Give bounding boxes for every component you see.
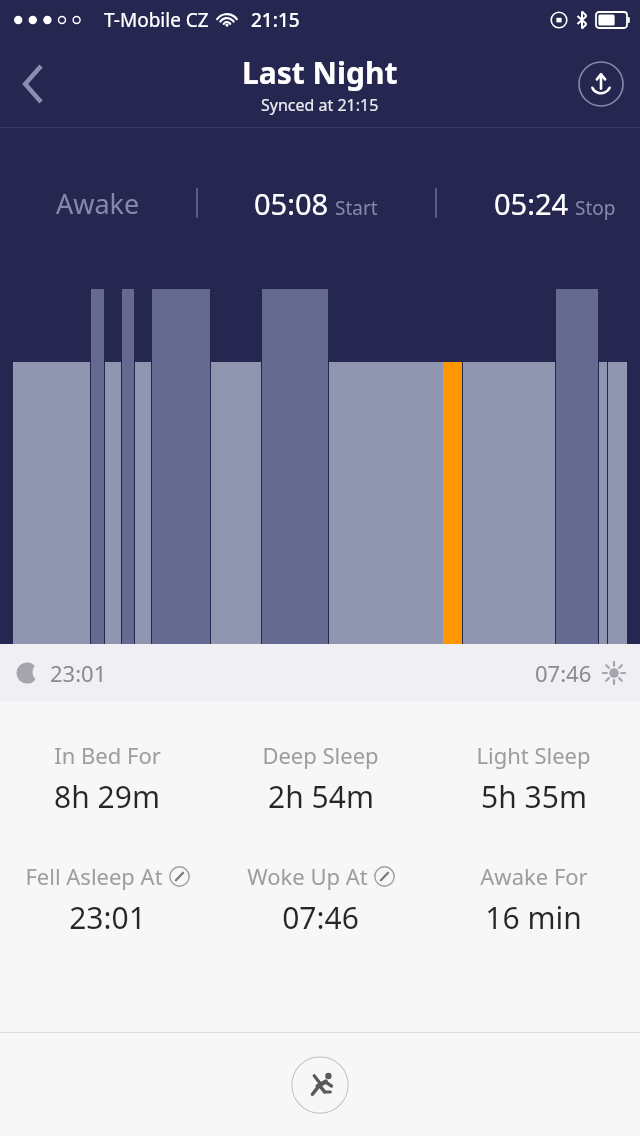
- staticText: 05:08: [254, 184, 329, 223]
- button[interactable]: Light Sleep: [427, 736, 640, 821]
- button[interactable]: Share: [576, 59, 626, 109]
- button[interactable]: Activity: [291, 1056, 349, 1114]
- staticText: 05:24: [494, 184, 569, 223]
- staticText: Awake: [56, 185, 140, 222]
- staticText: Fell Asleep At: [25, 861, 163, 891]
- staticText: 16 min: [485, 897, 582, 938]
- staticText: Start: [335, 195, 378, 221]
- staticText: Deep Sleep: [262, 740, 379, 770]
- button[interactable]: Woke Up At: [214, 857, 427, 942]
- button[interactable]: In Bed For: [0, 736, 214, 821]
- staticText: 07:46: [535, 658, 592, 688]
- staticText: Awake For: [480, 861, 588, 891]
- button[interactable]: Deep Sleep: [214, 736, 427, 821]
- button[interactable]: Awake For: [427, 857, 640, 942]
- button[interactable]: Back: [6, 56, 62, 112]
- staticText: 23:01: [50, 658, 107, 688]
- staticText: In Bed For: [54, 740, 161, 770]
- staticText: 07:46: [282, 897, 359, 938]
- staticText: 2h 54m: [268, 776, 374, 817]
- staticText: 5h 35m: [481, 776, 587, 817]
- staticText: Woke Up At: [247, 861, 368, 891]
- staticText: T-Mobile CZ: [104, 7, 209, 33]
- staticText: Light Sleep: [476, 740, 591, 770]
- staticText: Synced at 21:15: [261, 94, 379, 116]
- staticText: 23:01: [69, 897, 146, 938]
- staticText: 8h 29m: [54, 776, 160, 817]
- staticText: Stop: [575, 195, 616, 221]
- button[interactable]: Fell Asleep At: [0, 857, 214, 942]
- staticText: Last Night: [242, 52, 398, 93]
- staticText: 21:15: [251, 7, 300, 33]
